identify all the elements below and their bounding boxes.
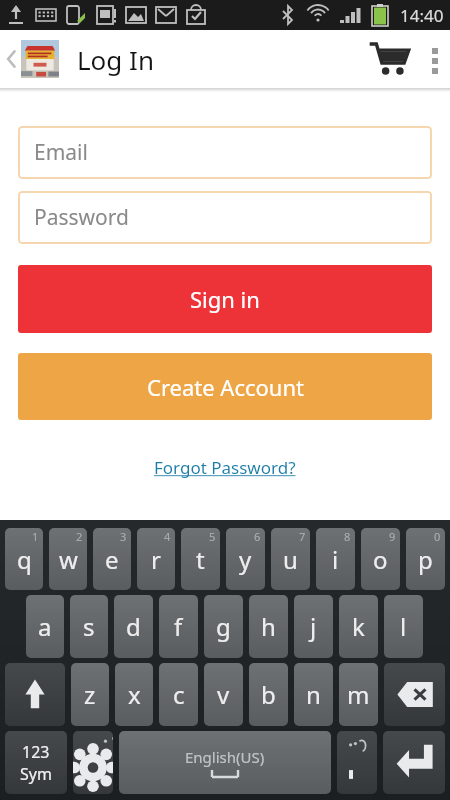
staticText: l [400, 610, 407, 643]
staticText: 14:40 [400, 4, 444, 27]
button[interactable]: k [339, 595, 378, 658]
button[interactable]: s [70, 595, 108, 658]
staticText: w [59, 543, 78, 576]
button[interactable]: c [159, 663, 198, 726]
staticText: e [105, 543, 119, 576]
staticText: b [261, 678, 276, 711]
button[interactable]: Password [18, 191, 432, 244]
staticText: p [418, 543, 433, 576]
button[interactable]: v [204, 663, 243, 726]
staticText: i [332, 543, 339, 576]
staticText: 7 [299, 529, 306, 544]
staticText: 123 [22, 741, 50, 763]
button[interactable]: Shift [5, 663, 65, 726]
button[interactable]: Sign in [18, 265, 432, 333]
button[interactable]: l [384, 595, 423, 658]
button[interactable]: More options [420, 30, 450, 88]
staticText: Create Account [147, 372, 304, 402]
staticText: n [306, 678, 321, 711]
staticText: h [261, 610, 276, 643]
button[interactable]: q [5, 528, 43, 590]
staticText: 1 [32, 529, 39, 544]
staticText: 8 [344, 529, 351, 544]
staticText: Log In [77, 42, 154, 77]
staticText: m [347, 678, 370, 711]
button[interactable]: i [316, 528, 355, 590]
staticText: 2 [76, 529, 83, 544]
button[interactable]: b [249, 663, 288, 726]
staticText: o [373, 543, 388, 576]
button[interactable]: h [249, 595, 288, 658]
staticText: English(US) [185, 747, 265, 767]
staticText: 5 [209, 529, 216, 544]
button[interactable]: 123 Sym [5, 731, 67, 794]
staticText: c [173, 678, 185, 711]
button[interactable]: n [294, 663, 333, 726]
staticText: a [38, 610, 52, 643]
staticText: g [216, 610, 231, 643]
button[interactable]: u [271, 528, 310, 590]
button[interactable]: e [93, 528, 131, 590]
button[interactable]: Settings [73, 731, 113, 794]
staticText: v [217, 678, 230, 711]
button[interactable]: t [181, 528, 220, 590]
staticText: j [310, 610, 317, 643]
staticText: k [352, 610, 365, 643]
staticText: 4 [164, 529, 171, 544]
staticText: d [126, 610, 141, 643]
button[interactable]: m [339, 663, 378, 726]
staticText: Sym [20, 763, 52, 785]
button[interactable]: Cart [358, 30, 420, 88]
button[interactable]: Period [337, 731, 377, 794]
button[interactable]: Email [18, 126, 432, 179]
button[interactable]: p [406, 528, 445, 590]
button[interactable]: a [26, 595, 64, 658]
button[interactable]: Create Account [18, 353, 432, 420]
staticText: t [196, 543, 205, 576]
staticText: f [174, 610, 183, 643]
button[interactable]: d [114, 595, 153, 658]
staticText: 9 [389, 529, 396, 544]
staticText: Sign in [190, 284, 260, 314]
staticText: z [84, 678, 96, 711]
staticText: Forgot Password? [154, 456, 296, 479]
staticText: Password [34, 203, 129, 232]
staticText: q [17, 543, 32, 576]
button[interactable]: y [226, 528, 265, 590]
staticText: r [151, 543, 161, 576]
button[interactable]: o [361, 528, 400, 590]
staticText: 0 [434, 529, 441, 544]
staticText: u [283, 543, 298, 576]
button[interactable]: Enter [383, 731, 445, 794]
button[interactable]: x [115, 663, 153, 726]
button[interactable]: Backspace [384, 663, 445, 726]
staticText: 3 [120, 529, 127, 544]
staticText: y [239, 543, 252, 576]
button[interactable]: Back [0, 30, 65, 88]
staticText: s [83, 610, 95, 643]
button[interactable]: Space [119, 731, 331, 794]
staticText: Email [34, 138, 88, 167]
button[interactable]: r [137, 528, 175, 590]
button[interactable]: j [294, 595, 333, 658]
button[interactable]: Forgot Password? [146, 452, 304, 483]
button[interactable]: w [49, 528, 87, 590]
staticText: 6 [254, 529, 261, 544]
staticText: x [128, 678, 141, 711]
button[interactable]: g [204, 595, 243, 658]
button[interactable]: f [159, 595, 198, 658]
button[interactable]: z [71, 663, 109, 726]
